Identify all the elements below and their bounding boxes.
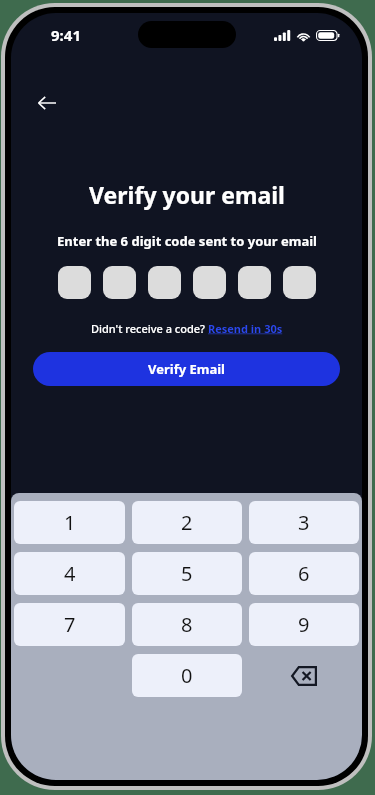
button[interactable]: 7 bbox=[14, 603, 125, 646]
button[interactable]: Verify Email bbox=[33, 352, 340, 386]
button[interactable]: Code digit 6 bbox=[283, 266, 316, 299]
button[interactable]: 6 bbox=[249, 552, 359, 595]
staticText: 9 bbox=[298, 611, 310, 638]
button[interactable]: 9 bbox=[249, 603, 359, 646]
staticText: 7 bbox=[64, 611, 76, 638]
button[interactable]: Resend in 30s bbox=[208, 321, 283, 336]
staticText: 5 bbox=[181, 560, 193, 587]
button[interactable]: Code digit 1 bbox=[58, 266, 91, 299]
button[interactable]: 8 bbox=[132, 603, 242, 646]
staticText: 2 bbox=[181, 509, 193, 536]
button[interactable]: Code digit 3 bbox=[148, 266, 181, 299]
button[interactable]: Backspace bbox=[249, 654, 359, 697]
staticText: 1 bbox=[64, 509, 76, 536]
button[interactable]: Code digit 2 bbox=[103, 266, 136, 299]
staticText: 4 bbox=[64, 560, 76, 587]
staticText: Enter the 6 digit code sent to your emai… bbox=[57, 232, 317, 250]
button[interactable]: 3 bbox=[249, 501, 359, 544]
staticText: 0 bbox=[181, 662, 193, 689]
button[interactable]: Code digit 4 bbox=[193, 266, 226, 299]
button[interactable]: 1 bbox=[14, 501, 125, 544]
staticText: Verify Email bbox=[148, 360, 225, 378]
staticText: Resend in 30s bbox=[208, 321, 283, 336]
staticText: 6 bbox=[298, 560, 310, 587]
staticText: 9:41 bbox=[51, 25, 81, 45]
staticText: 3 bbox=[298, 509, 310, 536]
button[interactable]: 2 bbox=[132, 501, 242, 544]
button[interactable]: 5 bbox=[132, 552, 242, 595]
button[interactable]: 4 bbox=[14, 552, 125, 595]
button[interactable]: Code digit 5 bbox=[238, 266, 271, 299]
staticText: Didn't receive a code? bbox=[91, 321, 208, 336]
button[interactable]: 0 bbox=[132, 654, 242, 697]
button[interactable]: Back bbox=[29, 85, 65, 121]
staticText: 8 bbox=[181, 611, 193, 638]
staticText: Verify your email bbox=[89, 179, 285, 210]
